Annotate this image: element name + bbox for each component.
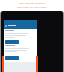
staticText: Earn Rewards Instantly bbox=[19, 1, 45, 4]
staticText: with Cards for Your Phone bbox=[17, 5, 47, 8]
button[interactable]: Get the app bbox=[5, 40, 19, 44]
button[interactable]: Earn Rewards Instantly bbox=[0, 0, 64, 11]
button[interactable]: Learn more bbox=[5, 56, 19, 60]
